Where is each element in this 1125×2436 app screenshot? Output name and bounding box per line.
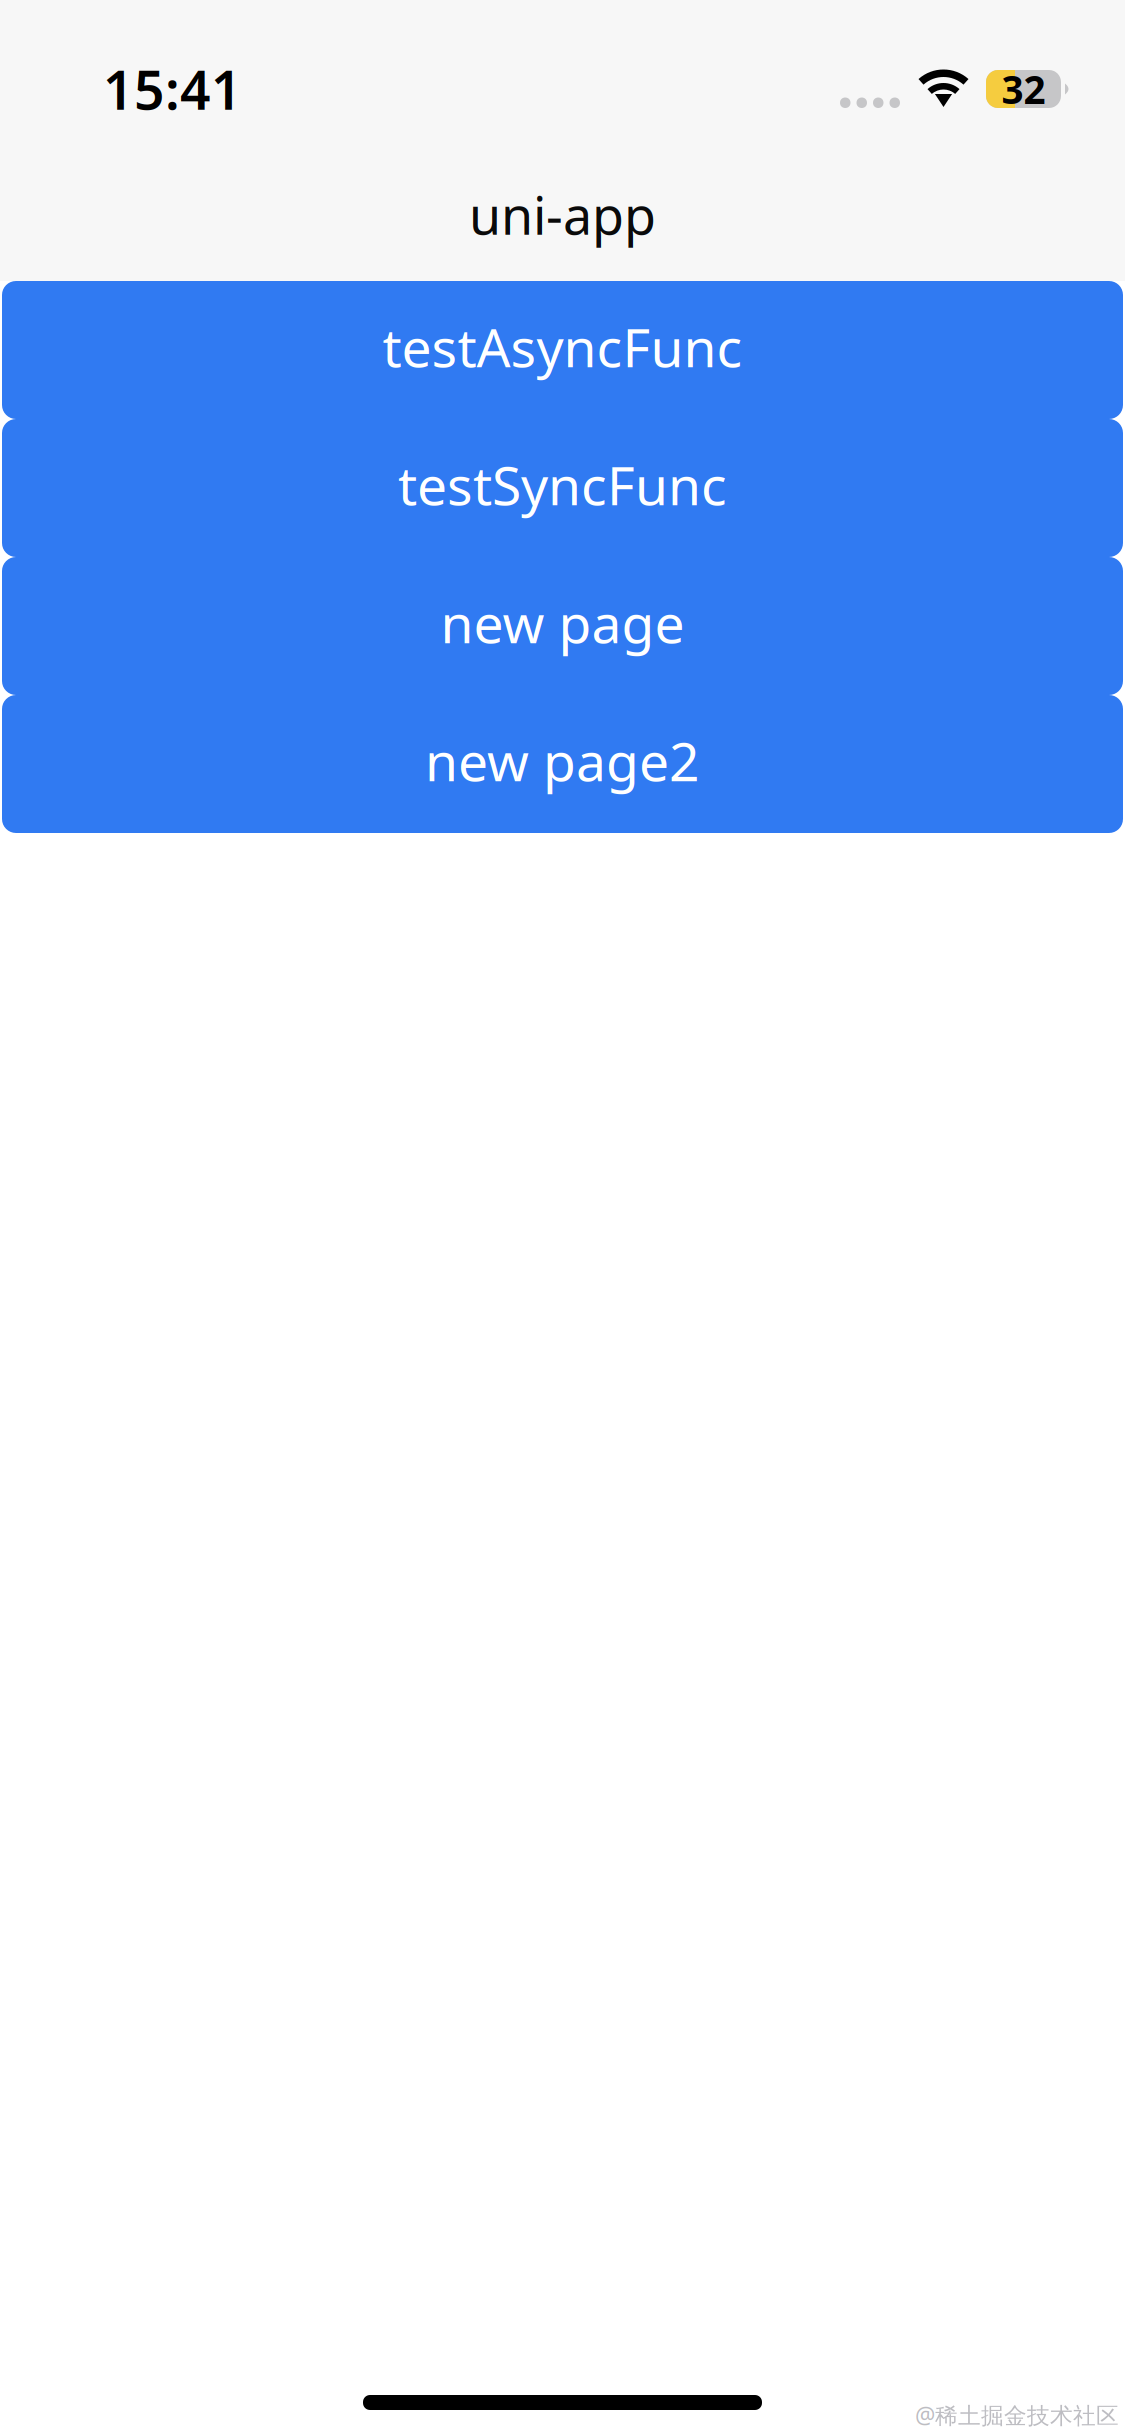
- staticText: 15:41: [103, 54, 242, 124]
- button[interactable]: new page: [2, 557, 1123, 695]
- staticText: testAsyncFunc: [382, 311, 742, 382]
- staticText: new page: [440, 587, 684, 658]
- staticText: 32: [1001, 63, 1045, 115]
- button[interactable]: testSyncFunc: [2, 419, 1123, 557]
- staticText: @稀土掘金技术社区: [915, 2400, 1119, 2430]
- button[interactable]: testAsyncFunc: [2, 281, 1123, 419]
- staticText: uni-app: [469, 180, 656, 249]
- button[interactable]: new page2: [2, 695, 1123, 833]
- staticText: testSyncFunc: [398, 449, 727, 520]
- staticText: new page2: [425, 725, 700, 796]
